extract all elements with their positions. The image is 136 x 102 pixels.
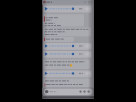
button[interactable] (0, 0, 136, 102)
